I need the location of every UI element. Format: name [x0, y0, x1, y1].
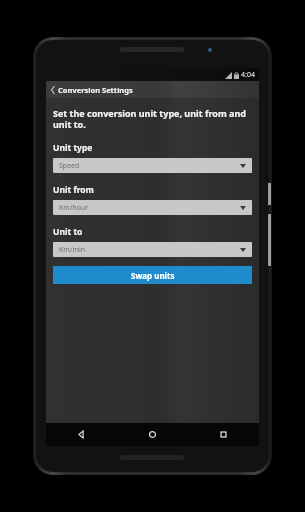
staticText: Speed [59, 161, 80, 171]
staticText: 4:04 [241, 70, 255, 80]
staticText: Km/min [59, 245, 86, 255]
button[interactable]: Speed [53, 158, 252, 173]
button[interactable]: Conversion Settings [46, 81, 259, 98]
staticText: Unit to [53, 226, 83, 238]
button[interactable]: Km/hour [53, 200, 252, 215]
button[interactable]: Km/min [53, 242, 252, 257]
button[interactable]: Recents [188, 423, 259, 446]
button[interactable]: Back [46, 423, 117, 446]
staticText: Km/hour [59, 203, 89, 213]
button[interactable]: Swap units [53, 266, 252, 284]
staticText: Conversion Settings [58, 85, 133, 95]
staticText: Swap units [131, 270, 175, 281]
staticText: Unit from [53, 184, 94, 196]
staticText: Set the conversion unit type, unit from … [53, 107, 252, 131]
staticText: Unit type [53, 142, 93, 154]
button[interactable]: Home [117, 423, 188, 446]
